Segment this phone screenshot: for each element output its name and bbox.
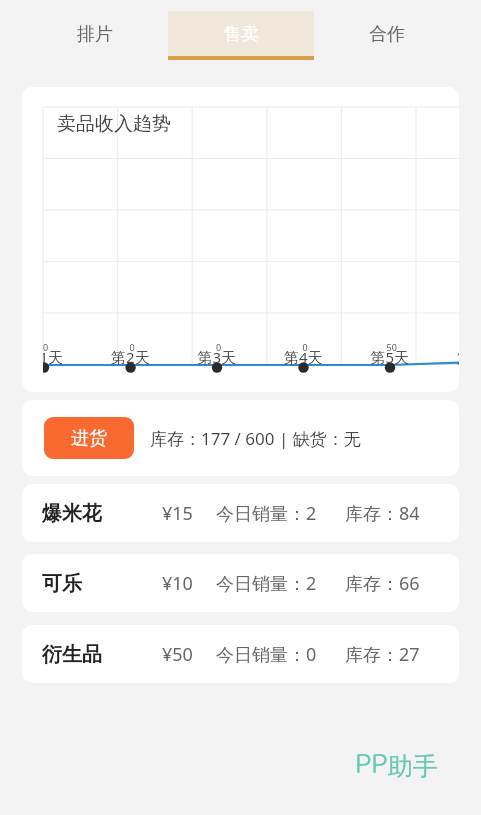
staticText: ¥50 bbox=[162, 642, 193, 667]
staticText: 售卖 bbox=[223, 23, 259, 46]
staticText: 爆米花 bbox=[42, 501, 102, 526]
staticText: ¥15 bbox=[162, 501, 193, 526]
staticText: 可乐 bbox=[42, 571, 82, 596]
staticText: 进货 bbox=[71, 427, 107, 450]
staticText: PP bbox=[355, 744, 388, 782]
staticText: 库存：177 / 600 | 缺货：无 bbox=[150, 427, 361, 450]
staticText: 今日销量：0 bbox=[216, 642, 317, 667]
button[interactable]: 进货 bbox=[44, 417, 134, 459]
staticText: 今日销量：2 bbox=[216, 501, 317, 526]
staticText: ¥10 bbox=[162, 571, 193, 596]
button[interactable]: 售卖 bbox=[168, 0, 314, 60]
button[interactable]: 排片 bbox=[22, 0, 168, 60]
staticText: 库存：66 bbox=[345, 571, 420, 596]
button[interactable]: 爆米花 bbox=[22, 484, 459, 542]
staticText: 合作 bbox=[369, 23, 405, 46]
staticText: 库存：84 bbox=[345, 501, 420, 526]
staticText: 排片 bbox=[77, 23, 113, 46]
staticText: 库存：27 bbox=[345, 642, 420, 667]
button[interactable]: 衍生品 bbox=[22, 625, 459, 683]
button[interactable]: 可乐 bbox=[22, 554, 459, 612]
staticText: 今日销量：2 bbox=[216, 571, 317, 596]
button[interactable]: 合作 bbox=[314, 0, 460, 60]
staticText: 助手 bbox=[388, 751, 438, 782]
staticText: 衍生品 bbox=[42, 642, 102, 667]
